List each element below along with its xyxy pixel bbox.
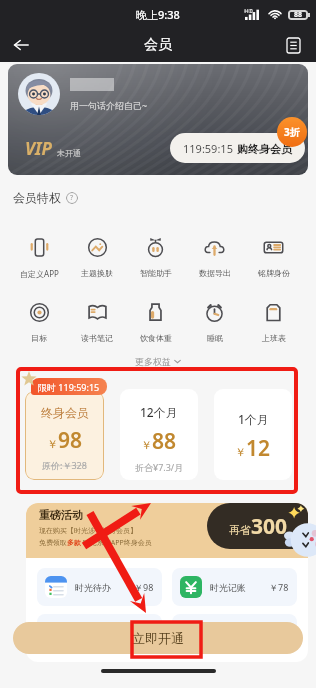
staticText: ￥78 (269, 581, 289, 593)
staticText: 未开通 (57, 148, 81, 158)
staticText: 时光系列APP终身会员 (81, 538, 152, 548)
staticText: ￥ (235, 445, 246, 459)
staticText: ￥ (141, 438, 152, 452)
staticText: 自定义APP (20, 268, 59, 279)
button[interactable]: 时光记账 (172, 568, 297, 606)
staticText: 铭牌身份 (258, 268, 290, 278)
staticText: 12 (246, 434, 271, 463)
staticText: 晚上9:38 (136, 7, 180, 22)
staticText: 上班表 (262, 333, 286, 343)
button[interactable]: 1个月 (214, 389, 292, 480)
staticText: 12个月 (140, 404, 178, 420)
button[interactable]: 自定义APP (10, 237, 68, 279)
staticText: 3折 (284, 125, 300, 139)
staticText: 时光待办 (75, 582, 111, 593)
staticText: 数据导出 (199, 268, 231, 278)
staticText: 1个月 (238, 411, 269, 427)
staticText: 饮食体重 (140, 333, 172, 343)
button[interactable]: 主题换肤 (68, 237, 126, 278)
staticText: 119:59:15 (183, 141, 233, 156)
button[interactable]: 订单 (280, 32, 306, 58)
button[interactable]: 读书笔记 (68, 302, 126, 343)
button[interactable]: 终身会员 (25, 391, 104, 480)
staticText: 立即开通 (132, 630, 184, 646)
staticText: 用一句话介绍自己~ (70, 99, 148, 111)
staticText: 98 (58, 426, 83, 455)
button[interactable]: 立即开通 (13, 622, 303, 654)
staticText: 更多权益 (135, 356, 171, 367)
staticText: VIP (25, 137, 52, 160)
button[interactable]: 更多权益 (0, 356, 316, 367)
staticText: 智能助手 (140, 268, 172, 278)
staticText: 重磅活动 (39, 508, 83, 522)
staticText: 300 (251, 512, 288, 541)
staticText: 现在购买【时光涉一终身会员】 (39, 526, 137, 535)
button[interactable]: 饮食体重 (126, 302, 185, 343)
staticText: 原价:￥328 (42, 459, 87, 471)
staticText: 免费领取 (39, 538, 67, 547)
button[interactable]: 3折 (277, 117, 307, 147)
button[interactable]: 时光待办 (37, 568, 162, 606)
button[interactable]: 铭牌身份 (244, 237, 303, 278)
staticText: ￥68 (134, 627, 154, 639)
staticText: ? (70, 193, 74, 203)
staticText: 读书笔记 (81, 333, 113, 343)
staticText: 目标 (31, 333, 47, 343)
staticText: 折合¥7.3/月 (135, 461, 184, 473)
staticText: ￥ (47, 437, 58, 451)
staticText: 主题换肤 (81, 268, 113, 278)
button[interactable]: 帮助 (66, 192, 78, 204)
staticText: 88 (294, 10, 303, 20)
staticText: 会员 (144, 36, 172, 54)
button[interactable]: 时光清单 (172, 614, 297, 652)
button[interactable]: 智能助手 (126, 237, 185, 278)
staticText: 时光记账 (210, 582, 246, 593)
button[interactable]: 119:59:15 (170, 133, 305, 163)
button[interactable]: 睡眠 (185, 302, 244, 343)
staticText: 会员特权 (13, 190, 61, 205)
button[interactable]: 目标 (10, 302, 68, 343)
button[interactable]: 用一句话介绍自己~ (8, 64, 308, 175)
button[interactable]: 上班表 (244, 302, 303, 343)
button[interactable]: 12个月 (120, 389, 198, 480)
staticText: 睡眠 (207, 333, 223, 343)
button[interactable]: 时光手帐 (37, 614, 162, 652)
staticText: 终身会员 (41, 405, 89, 420)
button[interactable]: 返回 (6, 30, 36, 60)
button[interactable]: 数据导出 (185, 237, 244, 278)
staticText: 再省 (229, 523, 251, 537)
staticText: 多款 (67, 538, 81, 547)
staticText: ￥98 (134, 581, 154, 593)
staticText: 购终身会员 (237, 142, 292, 156)
staticText: 限时 119:59:15 (38, 381, 100, 393)
staticText: 88 (152, 427, 177, 456)
